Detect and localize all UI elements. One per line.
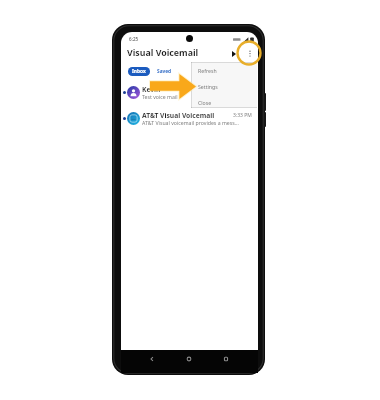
- button[interactable]: More options: [244, 46, 256, 58]
- staticText: Inbox: [132, 68, 146, 75]
- staticText: AT&T Visual Voicemail: [142, 111, 240, 120]
- staticText: Settings: [198, 83, 218, 90]
- button[interactable]: Back: [149, 356, 155, 362]
- button[interactable]: Refresh: [191, 62, 257, 78]
- button[interactable]: Kevin: [121, 80, 258, 104]
- staticText: AT&T Visual voicemail provides a mess…: [142, 119, 250, 126]
- staticText: 3:33 PM: [233, 112, 252, 119]
- staticText: Test voice mail: [142, 93, 250, 100]
- staticText: Close: [198, 99, 212, 106]
- staticText: Kevin: [142, 85, 202, 94]
- button[interactable]: Inbox: [128, 67, 150, 76]
- button[interactable]: Home: [186, 356, 192, 362]
- button[interactable]: Settings: [191, 78, 257, 94]
- staticText: Refresh: [198, 67, 217, 74]
- button[interactable]: Saved: [154, 67, 174, 76]
- staticText: 6:25: [129, 36, 139, 42]
- staticText: Saved: [157, 68, 172, 75]
- staticText: Visual Voicemail: [127, 47, 199, 59]
- button[interactable]: AT&T Visual Voicemail: [121, 106, 258, 130]
- button[interactable]: Close: [191, 94, 257, 110]
- button[interactable]: Recent apps: [223, 356, 229, 362]
